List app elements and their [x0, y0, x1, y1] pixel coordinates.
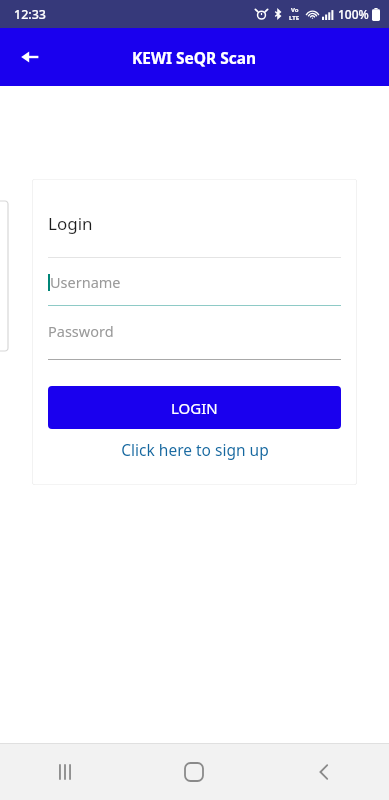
staticText: Vo: [291, 6, 299, 14]
staticText: Username: [50, 272, 121, 292]
button[interactable]: Recents: [0, 744, 129, 800]
staticText: KEWI SeQR Scan: [132, 47, 257, 68]
button[interactable]: Click here to sign up: [48, 429, 341, 469]
staticText: 12:33: [14, 6, 47, 23]
staticText: 100%: [338, 6, 369, 22]
staticText: Click here to sign up: [121, 439, 269, 460]
button[interactable]: Home: [129, 744, 259, 800]
staticText: LOGIN: [171, 398, 218, 418]
staticText: Password: [48, 321, 114, 341]
button[interactable]: Password: [48, 306, 341, 360]
button[interactable]: LOGIN: [48, 386, 341, 429]
staticText: LTE: [289, 14, 300, 22]
staticText: Login: [48, 212, 93, 235]
button[interactable]: Back: [8, 35, 52, 79]
button[interactable]: Back: [259, 744, 389, 800]
button[interactable]: Username: [48, 258, 341, 306]
